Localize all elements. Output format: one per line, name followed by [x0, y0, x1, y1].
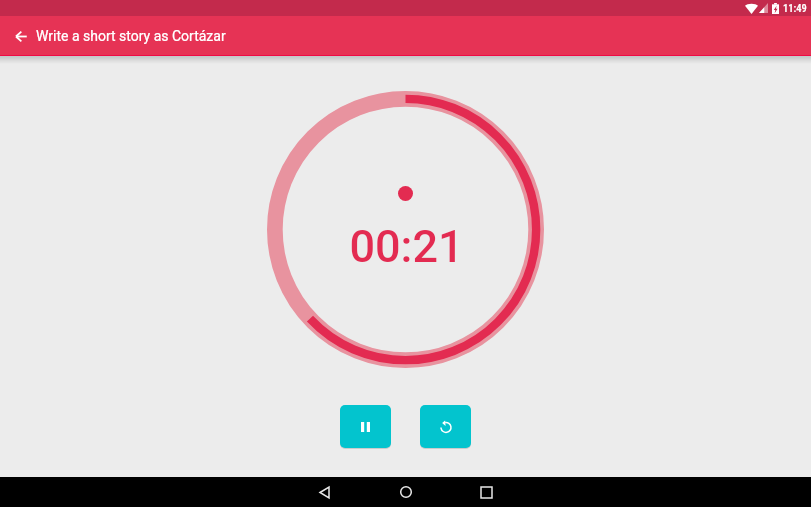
staticText: 11:49 [783, 2, 807, 14]
button[interactable]: Back [0, 16, 40, 56]
staticText: Write a short story as Cortázar [36, 28, 226, 44]
button[interactable]: Pause [340, 405, 391, 448]
button[interactable]: Home [385, 477, 426, 507]
button[interactable]: Recents [466, 477, 507, 507]
button[interactable]: Back [304, 477, 345, 507]
button[interactable]: Restart [420, 405, 471, 448]
staticText: 00:21 [349, 220, 464, 273]
